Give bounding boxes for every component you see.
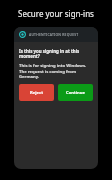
button[interactable]: Continue <box>58 84 93 101</box>
staticText: Is this you signing in at this moment? <box>19 48 93 60</box>
staticText: AUTHENTICATION REQUEST <box>29 32 79 37</box>
staticText: Secure your sign-ins <box>0 8 112 19</box>
button[interactable]: Reject <box>19 84 54 101</box>
staticText: Reject <box>30 90 43 96</box>
other: Authentication request <box>19 31 26 38</box>
staticText: This is for signing into Windows. The re… <box>19 63 93 79</box>
staticText: Continue <box>66 90 86 96</box>
